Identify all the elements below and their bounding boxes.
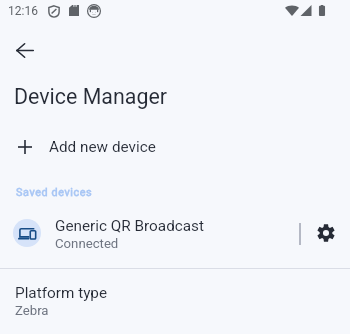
staticText: Add new device (49, 138, 156, 156)
button[interactable]: Settings (311, 218, 340, 247)
staticText: Zebra (15, 303, 49, 318)
staticText: Connected (55, 236, 119, 251)
staticText: Device Manager (14, 84, 168, 109)
button[interactable]: Back (4, 30, 45, 71)
button[interactable]: Generic QR Broadcast (0, 212, 350, 254)
staticText: 12:16 (8, 4, 38, 18)
staticText: Saved devices (16, 186, 93, 199)
staticText: Generic QR Broadcast (55, 217, 205, 235)
button[interactable]: Platform type (0, 269, 350, 325)
button[interactable]: Add new device (0, 130, 350, 164)
staticText: Platform type (15, 284, 108, 302)
